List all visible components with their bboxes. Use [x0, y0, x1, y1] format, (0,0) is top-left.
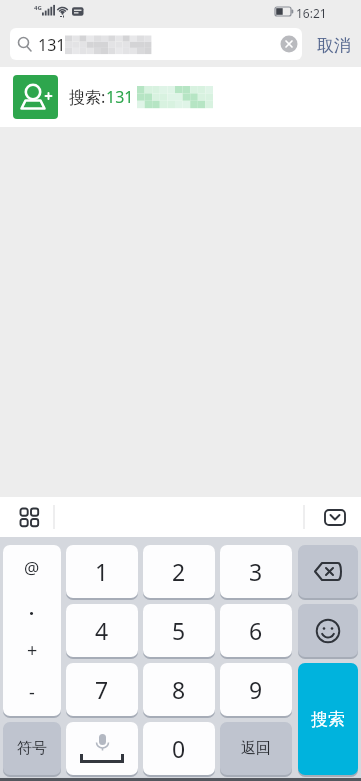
- staticText: .: [29, 596, 35, 621]
- button[interactable]: [10, 497, 48, 537]
- button[interactable]: 131: [10, 28, 302, 60]
- button[interactable]: [298, 545, 358, 598]
- staticText: 1: [95, 556, 109, 587]
- staticText: +: [27, 638, 38, 663]
- staticText: 符号: [17, 739, 47, 758]
- button[interactable]: 8: [143, 663, 215, 716]
- staticText: 131: [106, 86, 134, 108]
- staticText: 16:21: [296, 5, 327, 21]
- button[interactable]: 3: [220, 545, 292, 598]
- staticText: 取消: [317, 35, 351, 56]
- button[interactable]: @: [3, 545, 61, 716]
- staticText: 8: [172, 674, 186, 705]
- staticText: 9: [249, 674, 263, 705]
- staticText: @: [24, 556, 40, 579]
- button[interactable]: [298, 604, 358, 657]
- button[interactable]: 搜索:: [0, 67, 361, 127]
- staticText: 2: [172, 556, 186, 587]
- button[interactable]: 取消: [306, 24, 361, 66]
- button[interactable]: 6: [220, 604, 292, 657]
- staticText: 7: [95, 674, 109, 705]
- staticText: 搜索:: [69, 86, 106, 108]
- staticText: -: [29, 680, 35, 705]
- staticText: 6: [249, 615, 263, 646]
- button[interactable]: 4: [66, 604, 138, 657]
- button[interactable]: [66, 722, 138, 775]
- staticText: 0: [172, 733, 186, 764]
- staticText: 4: [95, 615, 109, 646]
- button[interactable]: 2: [143, 545, 215, 598]
- button[interactable]: [272, 28, 302, 60]
- button[interactable]: 0: [143, 722, 215, 775]
- staticText: 131: [38, 34, 66, 56]
- button[interactable]: 1: [66, 545, 138, 598]
- button[interactable]: 符号: [3, 722, 61, 775]
- staticText: 搜索: [311, 709, 345, 730]
- staticText: 4G: [34, 4, 42, 12]
- button[interactable]: 5: [143, 604, 215, 657]
- button[interactable]: 返回: [220, 722, 292, 775]
- staticText: 5: [172, 615, 186, 646]
- button[interactable]: [314, 497, 356, 537]
- button[interactable]: 9: [220, 663, 292, 716]
- staticText: 返回: [241, 739, 271, 758]
- staticText: 3: [249, 556, 263, 587]
- button[interactable]: 7: [66, 663, 138, 716]
- button[interactable]: 搜索: [298, 663, 358, 775]
